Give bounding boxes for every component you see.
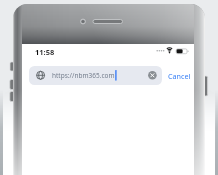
staticText: 11:58 (35, 47, 55, 57)
staticText: Cancel (168, 71, 191, 81)
button[interactable]: Cancel (165, 67, 197, 83)
staticText: https://nbm365.com (52, 71, 115, 80)
button[interactable] (29, 66, 162, 85)
button[interactable] (147, 70, 158, 81)
